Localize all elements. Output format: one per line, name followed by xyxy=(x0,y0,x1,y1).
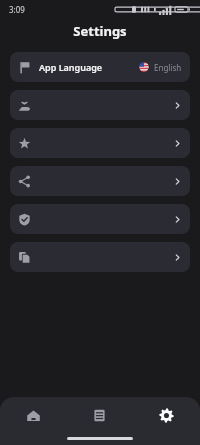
button[interactable]: Share xyxy=(10,166,190,196)
button[interactable]: Support xyxy=(10,90,190,120)
staticText: App Language xyxy=(39,61,103,73)
button[interactable]: Terms xyxy=(10,242,190,272)
button[interactable]: Library xyxy=(66,397,133,433)
staticText: 3:09 xyxy=(9,4,25,15)
button[interactable]: Privacy policy xyxy=(10,204,190,234)
button[interactable]: Settings xyxy=(133,397,200,433)
staticText: Settings xyxy=(73,22,127,40)
button[interactable]: Rate app xyxy=(10,128,190,158)
staticText: English xyxy=(154,62,182,73)
button[interactable]: App Language xyxy=(10,52,190,82)
button[interactable]: Home xyxy=(0,397,66,433)
